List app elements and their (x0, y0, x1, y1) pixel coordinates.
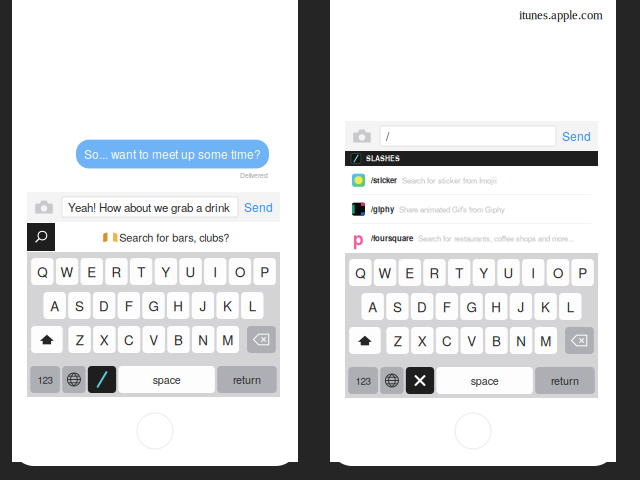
button[interactable]: F (118, 292, 140, 319)
button[interactable]: N (192, 326, 214, 353)
button[interactable]: T (448, 259, 470, 286)
staticText: return (233, 372, 261, 387)
button[interactable]: /sticker (345, 166, 598, 195)
button[interactable]: Shift (31, 326, 63, 353)
button[interactable]: T (130, 258, 152, 285)
staticText: J (199, 296, 206, 315)
button[interactable]: K (216, 292, 239, 319)
button[interactable]: U (179, 258, 202, 285)
staticText: I (531, 263, 535, 282)
button[interactable]: A (361, 293, 384, 320)
button[interactable]: Z (68, 326, 91, 353)
staticText: Z (76, 330, 84, 349)
staticText: B (492, 331, 501, 350)
staticText: K (223, 296, 232, 315)
button[interactable]: C (118, 326, 140, 353)
button[interactable]: L (241, 292, 263, 319)
staticText: Search for restaurants, coffee shops and… (418, 233, 574, 244)
button[interactable]: Switch keyboard (380, 367, 403, 394)
button[interactable]: p (345, 224, 598, 253)
button[interactable]: C (436, 327, 458, 354)
staticText: /sticker (371, 175, 397, 186)
button[interactable]: return (217, 366, 277, 393)
staticText: T (137, 262, 145, 281)
button[interactable]: Send (556, 121, 597, 151)
button[interactable]: Q (349, 259, 371, 286)
button[interactable]: R (423, 259, 446, 286)
button[interactable]: D (93, 292, 115, 319)
button[interactable]: Q (31, 258, 53, 285)
button[interactable]: K (534, 293, 557, 320)
button[interactable]: / (380, 126, 556, 146)
button[interactable]: Delete (565, 327, 594, 354)
button[interactable]: A (43, 292, 66, 319)
button[interactable]: S (68, 292, 91, 319)
button[interactable]: P (253, 258, 276, 285)
button[interactable]: V (142, 326, 165, 353)
button[interactable]: B (485, 327, 508, 354)
button[interactable]: I (204, 258, 226, 285)
button[interactable]: G (460, 293, 483, 320)
staticText: space (153, 372, 181, 387)
staticText: H (173, 296, 183, 315)
staticText: X (418, 331, 427, 350)
staticText: F (443, 297, 451, 316)
button[interactable]: F (436, 293, 458, 320)
button[interactable]: N (510, 327, 532, 354)
button[interactable]: W (56, 258, 78, 285)
button[interactable]: G (142, 292, 165, 319)
staticText: return (551, 373, 579, 388)
button[interactable]: Y (473, 259, 495, 286)
button[interactable]: O (547, 259, 569, 286)
button[interactable]: 123 (30, 366, 60, 393)
button[interactable]: J (192, 292, 214, 319)
button[interactable]: 123 (348, 367, 378, 394)
button[interactable]: Y (155, 258, 177, 285)
button[interactable]: X (411, 327, 433, 354)
button[interactable]: Search for bars, clubs? (106, 223, 229, 251)
button[interactable]: Delete (247, 326, 276, 353)
staticText: U (503, 263, 513, 282)
button[interactable]: Send (238, 192, 279, 222)
staticText: Z (394, 331, 402, 350)
button[interactable]: I (522, 259, 544, 286)
staticText: V (467, 331, 476, 350)
button[interactable]: return (535, 367, 595, 394)
button[interactable]: S (386, 293, 409, 320)
button[interactable]: H (485, 293, 507, 320)
button[interactable]: Yeah! How about we grab a drink (62, 197, 238, 217)
staticText: Y (161, 262, 170, 281)
button[interactable]: Z (386, 327, 409, 354)
button[interactable]: J (510, 293, 532, 320)
button[interactable]: Shift (349, 327, 381, 354)
button[interactable]: U (497, 259, 520, 286)
button[interactable]: R (105, 258, 128, 285)
button[interactable]: /giphy (345, 195, 598, 224)
button[interactable]: space (436, 367, 533, 394)
button[interactable]: Slash commands (88, 366, 116, 393)
button[interactable]: M (535, 327, 557, 354)
staticText: G (148, 296, 158, 315)
staticText: R (111, 262, 121, 281)
button[interactable]: P (571, 259, 594, 286)
button[interactable]: H (167, 292, 189, 319)
button[interactable]: Camera (353, 121, 371, 151)
staticText: F (125, 296, 133, 315)
button[interactable]: E (80, 258, 103, 285)
button[interactable]: L (559, 293, 581, 320)
button[interactable]: Clear (406, 367, 434, 394)
button[interactable]: V (460, 327, 483, 354)
button[interactable]: M (217, 326, 239, 353)
button[interactable]: Camera (35, 192, 53, 222)
button[interactable]: space (118, 366, 215, 393)
button[interactable]: O (229, 258, 251, 285)
button[interactable]: W (374, 259, 396, 286)
button[interactable]: D (411, 293, 433, 320)
staticText: J (517, 297, 524, 316)
button[interactable]: B (167, 326, 190, 353)
button[interactable]: X (93, 326, 115, 353)
button[interactable]: Search (27, 223, 55, 251)
staticText: Delivered (240, 170, 268, 180)
button[interactable]: Switch keyboard (62, 366, 86, 393)
button[interactable]: E (398, 259, 421, 286)
